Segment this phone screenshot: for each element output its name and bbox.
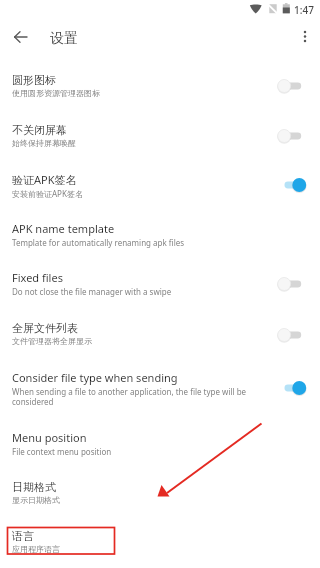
staticText: File context menu position bbox=[12, 446, 112, 457]
staticText: Menu position bbox=[12, 430, 87, 445]
button[interactable]: Disabled bbox=[278, 327, 304, 343]
staticText: Consider file type when sending bbox=[12, 370, 178, 385]
staticText: 始终保持屏幕唤醒 bbox=[12, 138, 76, 148]
staticText: 使用圆形资源管理器图标 bbox=[12, 88, 100, 98]
button[interactable]: 圆形图标 bbox=[0, 68, 320, 118]
staticText: 全屏文件列表 bbox=[12, 321, 78, 335]
staticText: 不关闭屏幕 bbox=[12, 123, 67, 137]
button[interactable]: 语言 bbox=[0, 525, 320, 568]
staticText: Do not close the file manager with a swi… bbox=[12, 286, 172, 297]
button[interactable]: More options bbox=[293, 25, 316, 48]
staticText: Fixed files bbox=[12, 270, 63, 285]
button[interactable]: Disabled bbox=[278, 276, 304, 292]
button[interactable]: 验证APK签名 bbox=[0, 168, 320, 218]
staticText: 语言 bbox=[12, 529, 34, 543]
staticText: 1:47 bbox=[294, 3, 314, 17]
button[interactable]: Menu position bbox=[0, 427, 320, 476]
button[interactable]: Fixed files bbox=[0, 268, 320, 318]
button[interactable]: Back bbox=[4, 21, 36, 53]
staticText: Template for automatically renaming apk … bbox=[12, 237, 185, 248]
staticText: 验证APK签名 bbox=[12, 172, 77, 187]
staticText: 文件管理器将全屏显示 bbox=[12, 336, 92, 346]
button[interactable]: 日期格式 bbox=[0, 476, 320, 525]
button[interactable]: Enabled bbox=[278, 177, 304, 193]
button[interactable]: 全屏文件列表 bbox=[0, 317, 320, 367]
staticText: APK name template bbox=[12, 221, 115, 236]
button[interactable]: Enabled bbox=[278, 380, 304, 396]
staticText: When sending a file to another applicati… bbox=[12, 386, 272, 407]
button[interactable]: Disabled bbox=[278, 78, 304, 94]
staticText: 安装前验证APK签名 bbox=[12, 188, 83, 199]
staticText: 设置 bbox=[50, 30, 78, 48]
button[interactable]: Consider file type when sending bbox=[0, 367, 320, 427]
staticText: 显示日期格式 bbox=[12, 495, 60, 505]
staticText: 圆形图标 bbox=[12, 73, 56, 87]
button[interactable]: Disabled bbox=[278, 128, 304, 144]
button[interactable]: APK name template bbox=[0, 218, 320, 268]
staticText: 日期格式 bbox=[12, 480, 56, 494]
staticText: 应用程序语言 bbox=[12, 544, 60, 554]
button[interactable]: 不关闭屏幕 bbox=[0, 118, 320, 168]
